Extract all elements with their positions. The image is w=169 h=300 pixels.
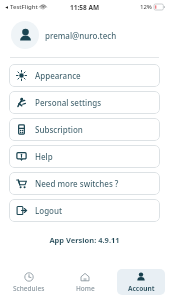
button[interactable]: Need more switches ? <box>9 172 160 195</box>
staticText: Personal settings <box>35 97 102 108</box>
button[interactable]: Subscription <box>9 118 160 141</box>
staticText: Home <box>76 284 95 293</box>
staticText: Subscription <box>35 124 83 135</box>
staticText: 11:58 AM <box>70 3 100 12</box>
staticText: TestFlight <box>10 3 38 11</box>
staticText: Need more switches ? <box>35 178 119 189</box>
staticText: Schedules <box>13 284 45 293</box>
button[interactable]: Help <box>9 145 160 168</box>
button[interactable]: Home <box>61 269 109 295</box>
staticText: Appearance <box>35 70 81 81</box>
button[interactable]: Account <box>117 269 165 295</box>
staticText: Logout <box>35 205 63 216</box>
button[interactable]: Personal settings <box>9 91 160 114</box>
staticText: App Version: 4.9.11 <box>0 235 169 245</box>
staticText: 12% <box>140 3 152 11</box>
button[interactable]: Logout <box>9 199 160 222</box>
other: Profile picture <box>11 21 39 49</box>
staticText: premal@nuro.tech <box>45 30 117 41</box>
button[interactable]: Schedules <box>4 269 53 295</box>
button[interactable]: Appearance <box>9 64 160 87</box>
staticText: Account <box>128 284 155 293</box>
staticText: Help <box>35 151 53 162</box>
